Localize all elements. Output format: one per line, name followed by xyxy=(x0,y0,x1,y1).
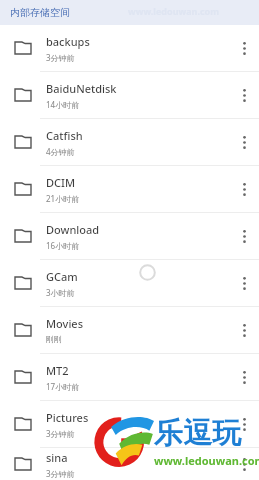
staticText: 3分钟前 xyxy=(46,428,75,439)
staticText: Pictures xyxy=(46,410,89,425)
staticText: Catfish xyxy=(46,128,83,143)
staticText: 17小时前 xyxy=(46,381,80,392)
staticText: 3小时前 xyxy=(46,287,75,298)
staticText: Download xyxy=(46,222,100,237)
button[interactable]: GCam xyxy=(0,260,259,306)
button[interactable]: More options xyxy=(229,213,259,259)
button[interactable]: sina xyxy=(0,448,259,480)
button[interactable]: DCIM xyxy=(0,166,259,212)
button[interactable]: More options xyxy=(229,401,259,447)
button[interactable]: More options xyxy=(229,354,259,400)
staticText: 4分钟前 xyxy=(46,146,75,157)
button[interactable]: More options xyxy=(229,448,259,480)
button[interactable]: backups xyxy=(0,25,259,71)
staticText: BaiduNetdisk xyxy=(46,81,117,96)
staticText: 乐逗玩 xyxy=(154,415,241,452)
staticText: 内部存储空间 xyxy=(10,6,70,19)
staticText: 刚刚 xyxy=(46,334,62,344)
button[interactable]: MT2 xyxy=(0,354,259,400)
staticText: www.ledouwan.com xyxy=(128,5,220,17)
staticText: 3分钟前 xyxy=(46,468,75,479)
staticText: MT2 xyxy=(46,363,69,378)
staticText: www.ledouwan.com xyxy=(154,453,259,468)
button[interactable]: 内部存储空间 xyxy=(0,0,259,25)
staticText: 14小时前 xyxy=(46,99,80,110)
button[interactable]: Movies xyxy=(0,307,259,353)
staticText: GCam xyxy=(46,269,78,284)
staticText: DCIM xyxy=(46,175,76,190)
button[interactable]: BaiduNetdisk xyxy=(0,72,259,118)
staticText: 16小时前 xyxy=(46,240,80,251)
staticText: sina xyxy=(46,450,68,465)
button[interactable]: More options xyxy=(229,307,259,353)
button[interactable]: More options xyxy=(229,72,259,118)
staticText: backups xyxy=(46,34,90,49)
staticText: 21小时前 xyxy=(46,193,80,204)
button[interactable]: Download xyxy=(0,213,259,259)
button[interactable]: Catfish xyxy=(0,119,259,165)
button[interactable]: Pictures xyxy=(0,401,259,447)
button[interactable]: More options xyxy=(229,260,259,306)
staticText: Movies xyxy=(46,316,84,331)
button[interactable]: More options xyxy=(229,166,259,212)
button[interactable]: More options xyxy=(229,119,259,165)
button[interactable]: More options xyxy=(229,25,259,71)
staticText: 3分钟前 xyxy=(46,52,75,63)
